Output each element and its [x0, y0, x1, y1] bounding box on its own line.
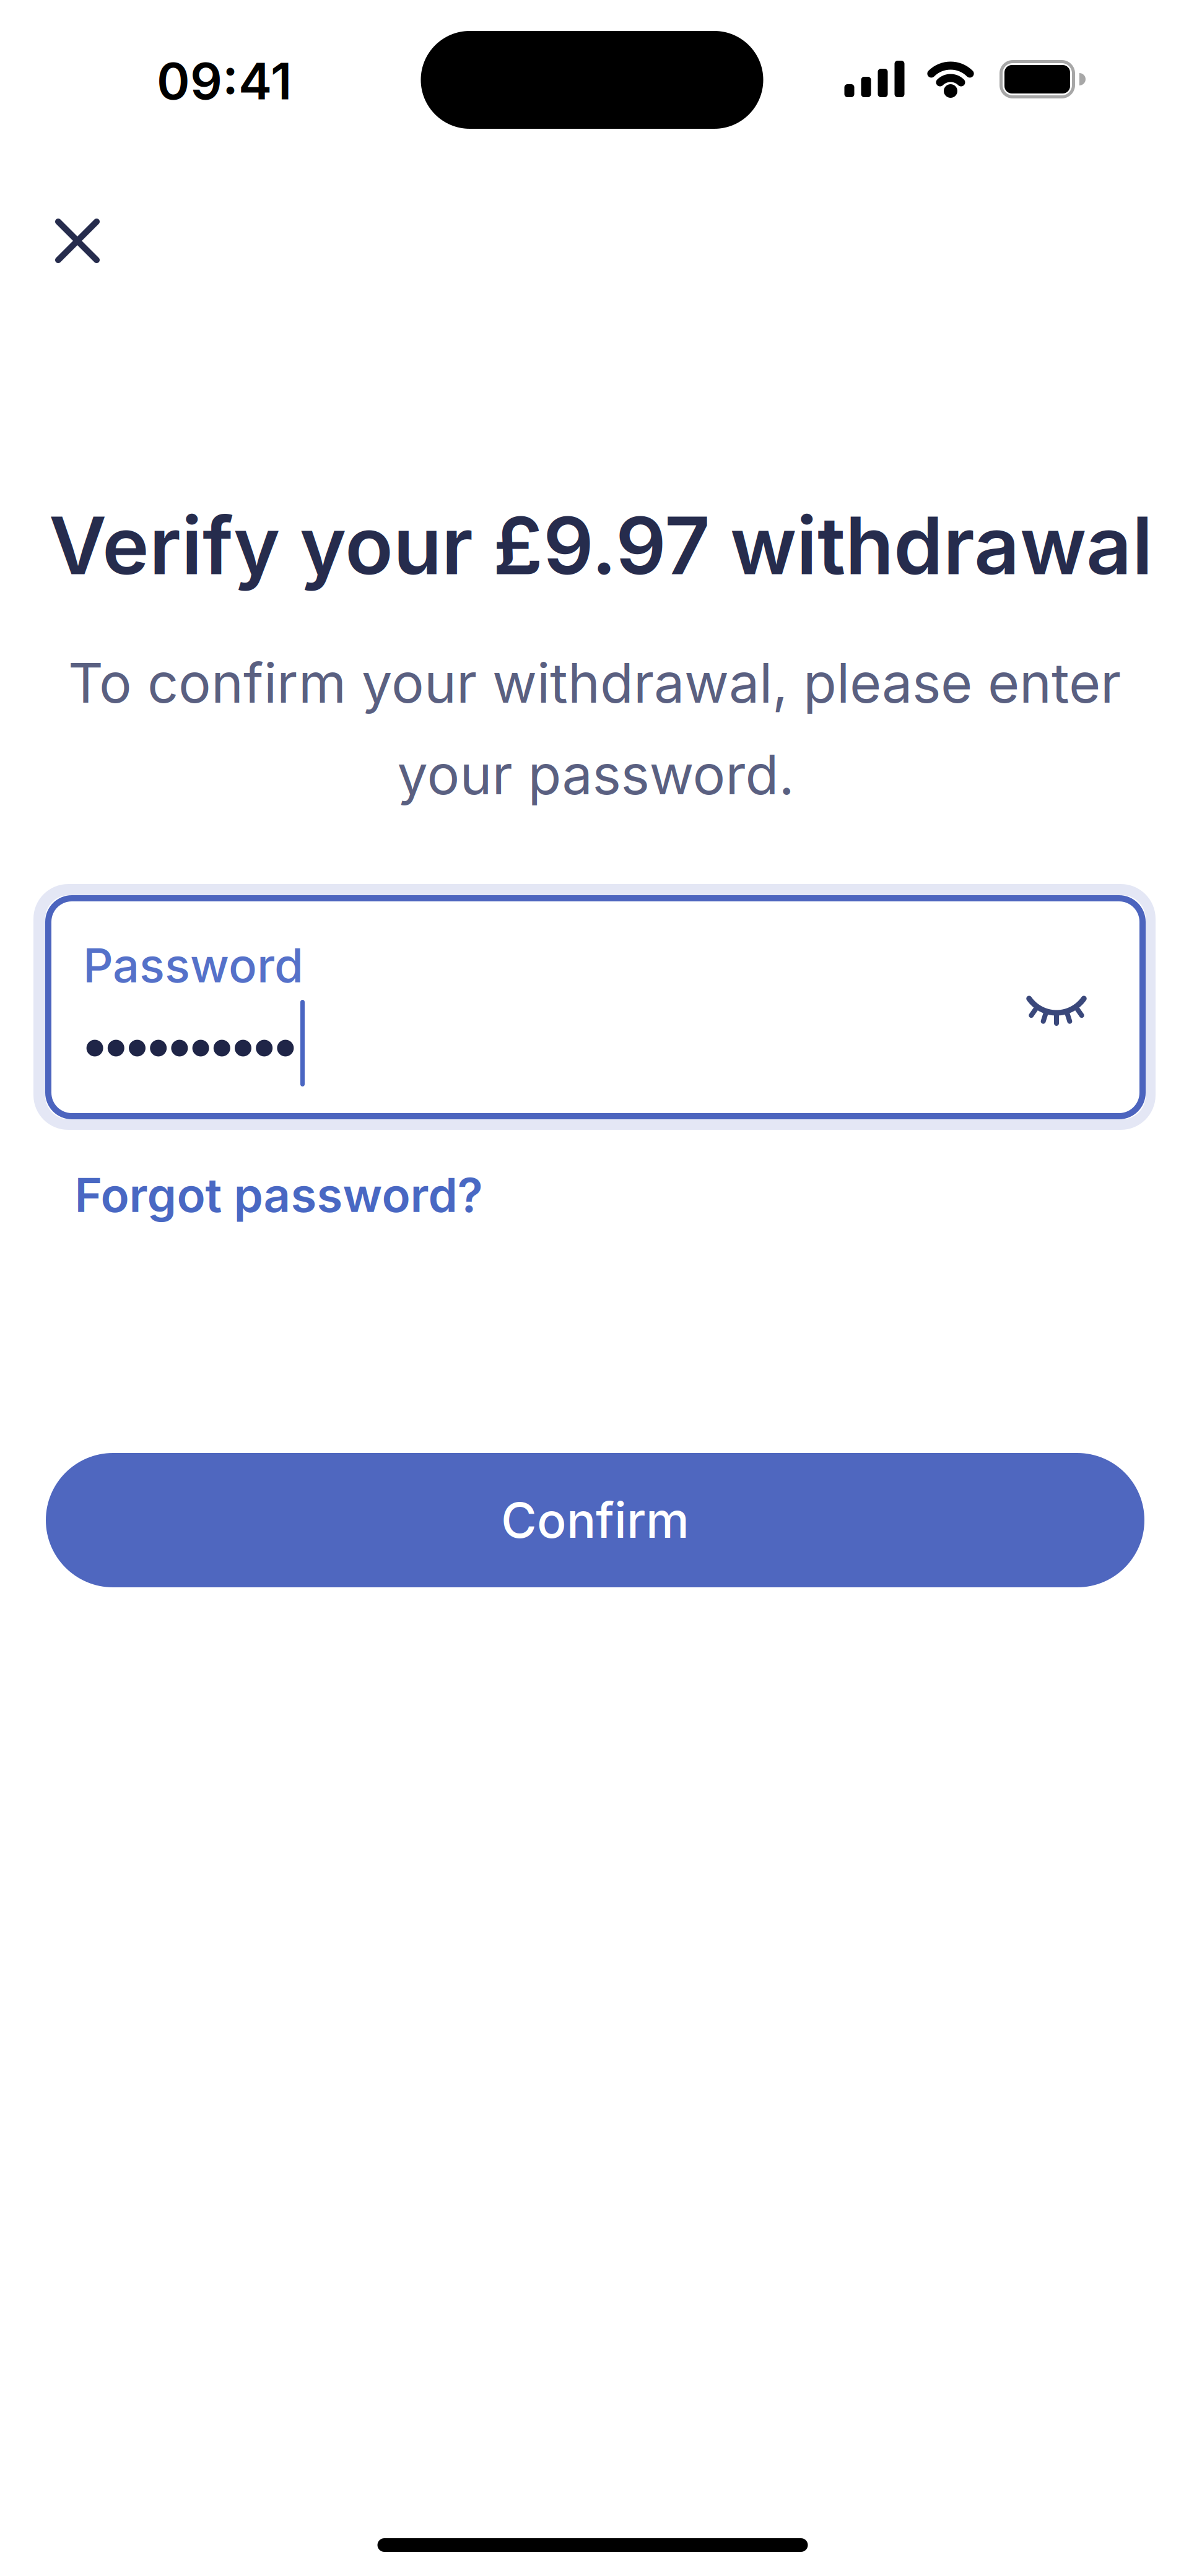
staticText: Verify your £9.97 withdrawal: [49, 499, 1153, 592]
staticText: Password: [83, 937, 303, 993]
staticText: 09:41: [157, 51, 292, 111]
staticText: Forgot password?: [75, 1167, 483, 1223]
button[interactable]: [34, 197, 121, 284]
staticText: To confirm your withdrawal, please enter: [68, 651, 1121, 715]
button[interactable]: Forgot password?: [75, 1167, 483, 1223]
button[interactable]: Password: [33, 884, 1156, 1130]
staticText: your password.: [397, 742, 794, 807]
button[interactable]: [1006, 974, 1105, 1049]
staticText: Confirm: [501, 1491, 689, 1549]
button[interactable]: Confirm: [46, 1453, 1144, 1587]
